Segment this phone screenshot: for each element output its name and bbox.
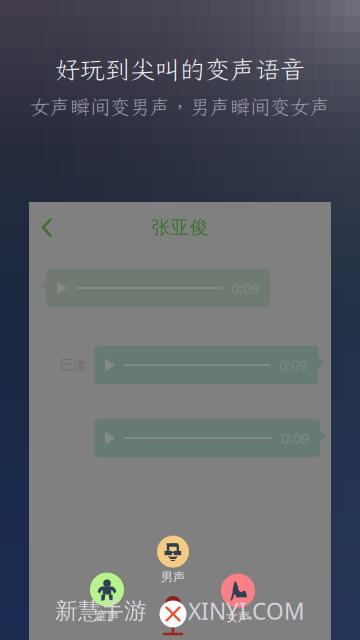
button[interactable]: 女声 <box>221 574 255 624</box>
staticText: 女声 <box>226 610 250 624</box>
staticText: 0:09 <box>231 278 259 298</box>
staticText: 童声 <box>95 609 119 623</box>
button[interactable]: 语音消息 0:09 <box>40 269 270 307</box>
button[interactable]: 取消 <box>155 596 191 636</box>
button[interactable]: 语音消息 0:09 <box>94 346 324 384</box>
button[interactable]: 语音消息 0:09 <box>94 419 326 457</box>
staticText: XINYI.COM <box>188 596 305 626</box>
staticText: 女声瞬间变男声，男声瞬间变女声 <box>30 93 330 120</box>
staticText: 好玩到尖叫的变声语音 <box>55 53 305 85</box>
staticText: 0:09 <box>281 428 309 448</box>
button[interactable]: 返回 <box>29 203 68 251</box>
button[interactable]: 男声 <box>157 536 189 584</box>
staticText: 男声 <box>161 570 185 584</box>
staticText: 张亚俊 <box>151 216 208 239</box>
staticText: 新慧手游 <box>55 597 147 625</box>
button[interactable]: 童声 <box>90 573 124 623</box>
staticText: 已读 <box>60 357 86 373</box>
staticText: 0:09 <box>279 355 307 375</box>
